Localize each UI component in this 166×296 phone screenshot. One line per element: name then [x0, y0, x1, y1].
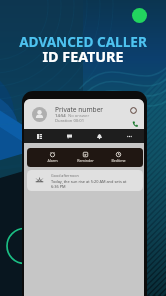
button[interactable]: Messages: [54, 129, 84, 143]
button[interactable]: Reminder: [69, 148, 102, 167]
button[interactable]: Bedtime: [102, 148, 135, 167]
button[interactable]: Notifications: [84, 129, 114, 143]
staticText: Bedtime: [111, 158, 126, 163]
staticText: ADVANCED CALLER: [0, 32, 166, 51]
staticText: Reminder: [77, 158, 94, 163]
staticText: Private number: [55, 105, 104, 114]
button[interactable]: Call back: [130, 119, 140, 129]
staticText: ID FEATURE: [0, 47, 166, 66]
staticText: 14:54: [55, 113, 66, 119]
staticText: Duration 00:01: [55, 118, 85, 124]
button[interactable]: More: [114, 129, 144, 143]
button[interactable]: Good afternoon: [27, 170, 143, 191]
staticText: Good afternoon: [51, 173, 79, 178]
button[interactable]: Call details: [127, 104, 139, 116]
staticText: No answer: [68, 113, 90, 119]
button[interactable]: Recents: [24, 129, 54, 143]
button[interactable]: Private number: [24, 99, 144, 129]
staticText: Today, the sun rise at 5:20 AM and sets …: [51, 179, 129, 189]
staticText: Alarm: [47, 158, 58, 163]
button[interactable]: Alarm: [35, 148, 69, 167]
